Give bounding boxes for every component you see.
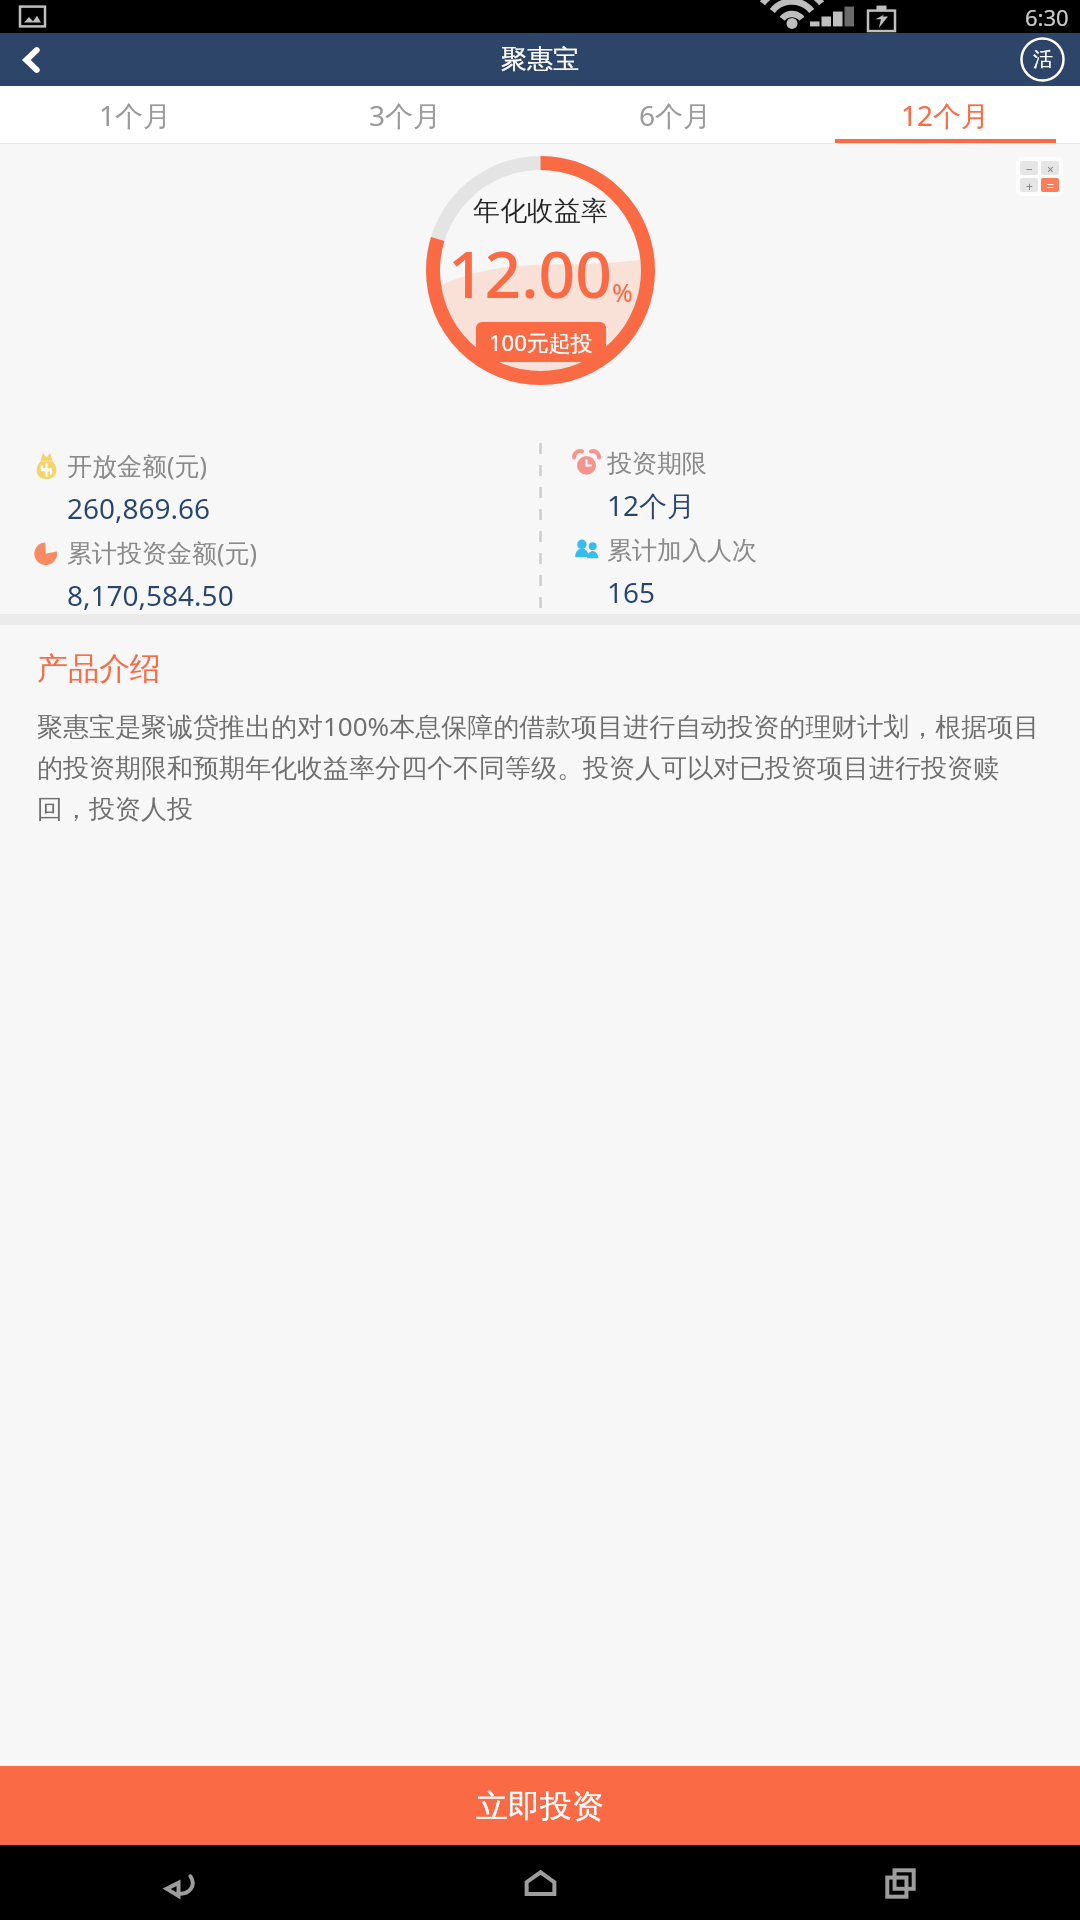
- staticText: 12个月: [607, 486, 696, 524]
- button[interactable]: 活动: [1020, 37, 1065, 82]
- staticText: 累计投资金额(元): [67, 535, 258, 569]
- button[interactable]: 100元起投: [476, 322, 606, 362]
- staticText: 聚惠宝: [501, 43, 579, 76]
- button[interactable]: Back: [144, 1847, 216, 1919]
- staticText: 产品介绍: [37, 649, 161, 688]
- staticText: 12个月: [901, 96, 990, 134]
- button[interactable]: −: [1020, 161, 1038, 175]
- staticText: 立即投资: [476, 1786, 604, 1826]
- staticText: %: [612, 275, 633, 309]
- staticText: −: [1026, 161, 1033, 175]
- staticText: 12.00: [448, 230, 612, 317]
- staticText: 6:30: [1025, 2, 1069, 32]
- button[interactable]: 12个月: [810, 86, 1080, 144]
- staticText: 100元起投: [489, 327, 593, 357]
- button[interactable]: =: [1041, 178, 1059, 192]
- staticText: 3个月: [369, 96, 442, 134]
- button[interactable]: +: [1020, 178, 1038, 192]
- staticText: 投资期限: [607, 448, 707, 479]
- button[interactable]: Back: [0, 33, 64, 86]
- staticText: =: [1047, 178, 1054, 192]
- staticText: 165: [607, 573, 656, 611]
- staticText: 开放金额(元): [67, 448, 208, 482]
- staticText: 260,869.66: [67, 489, 211, 526]
- staticText: 6个月: [639, 96, 712, 134]
- staticText: +: [1026, 178, 1033, 192]
- staticText: ×: [1047, 161, 1054, 175]
- button[interactable]: 收益计算器: [1016, 157, 1063, 196]
- staticText: 活: [1033, 47, 1053, 72]
- button[interactable]: 1个月: [0, 86, 270, 144]
- staticText: 1个月: [99, 96, 172, 134]
- staticText: 年化收益率: [473, 194, 608, 228]
- button[interactable]: 立即投资: [0, 1766, 1080, 1845]
- staticText: 聚惠宝是聚诚贷推出的对100%本息保障的借款项目进行自动投资的理财计划，根据项目…: [37, 708, 1043, 825]
- staticText: 累计加入人次: [607, 535, 757, 566]
- button[interactable]: 3个月: [270, 86, 540, 144]
- staticText: 8,170,584.50: [67, 576, 234, 614]
- button[interactable]: 6个月: [540, 86, 810, 144]
- button[interactable]: Recents: [864, 1847, 936, 1919]
- button[interactable]: Home: [504, 1847, 576, 1919]
- button[interactable]: ×: [1041, 161, 1059, 175]
